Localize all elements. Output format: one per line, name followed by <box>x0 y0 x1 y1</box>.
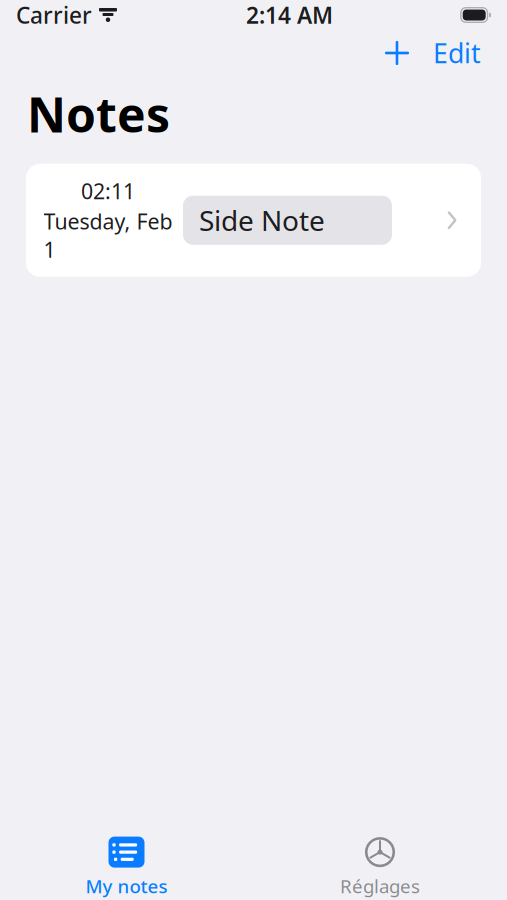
button[interactable]: New note <box>375 31 419 75</box>
button[interactable]: 02:11 <box>26 164 481 277</box>
staticText: Carrier <box>16 0 92 30</box>
staticText: My notes <box>85 874 167 898</box>
staticText: Tuesday, Feb 1 <box>43 207 172 264</box>
button[interactable]: Réglages <box>253 836 507 898</box>
button[interactable]: My notes <box>0 836 253 898</box>
staticText: Réglages <box>340 874 420 898</box>
staticText: Edit <box>433 35 481 71</box>
button[interactable]: Edit <box>419 31 495 75</box>
staticText: Side Note <box>199 202 325 239</box>
staticText: Notes <box>27 82 170 146</box>
staticText: 2:14 AM <box>246 0 333 30</box>
staticText: 02:11 <box>81 177 135 205</box>
